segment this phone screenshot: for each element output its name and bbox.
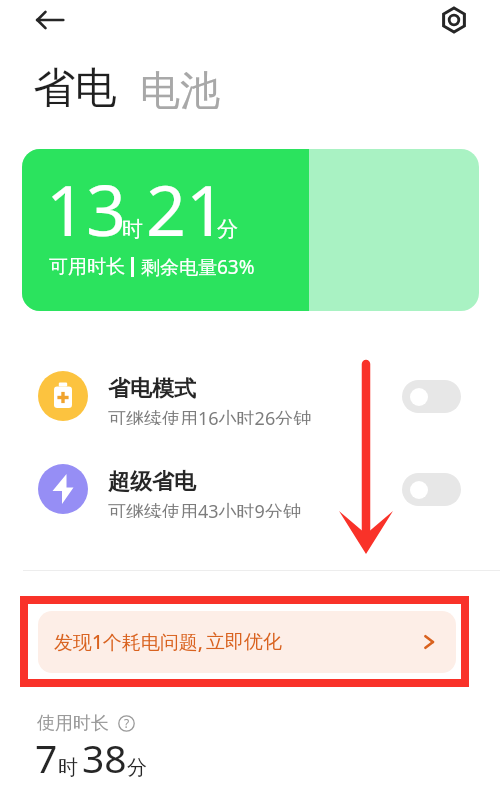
staticText: 7	[35, 731, 58, 784]
button[interactable]: 省电	[27, 56, 123, 121]
staticText: 13	[46, 161, 127, 256]
staticText: 时	[122, 216, 143, 242]
staticText: 可用时长	[49, 255, 125, 279]
staticText: 分	[127, 755, 147, 780]
staticText: 立即优化	[206, 630, 282, 654]
button[interactable]: 省电模式	[0, 371, 500, 421]
staticText: 可继续使用16小时26分钟	[108, 406, 312, 425]
staticText: 发现1个耗电问题,	[54, 629, 204, 655]
staticText: 超级省电	[108, 468, 196, 496]
staticText: 时	[58, 755, 78, 780]
staticText: 省电	[33, 62, 117, 115]
button[interactable]: 发现1个耗电问题,	[38, 611, 456, 673]
staticText: 分	[217, 216, 238, 242]
button[interactable]: Settings	[434, 0, 474, 40]
button[interactable]: Toggle 超级省电	[402, 473, 461, 506]
staticText: 38	[82, 731, 127, 784]
staticText: 可继续使用43小时9分钟	[108, 499, 301, 518]
button[interactable]: Back	[30, 0, 70, 40]
staticText: 省电模式	[108, 375, 196, 403]
button[interactable]: Toggle 省电模式	[402, 380, 461, 413]
button[interactable]: 超级省电	[0, 464, 500, 514]
staticText: ?	[124, 715, 130, 731]
staticText: 剩余电量63%	[141, 254, 255, 280]
staticText: 21	[146, 161, 227, 256]
staticText: 电池	[140, 65, 220, 115]
button[interactable]: 13	[22, 149, 479, 311]
staticText: 使用时长	[37, 712, 109, 735]
button[interactable]: 电池	[134, 59, 226, 121]
